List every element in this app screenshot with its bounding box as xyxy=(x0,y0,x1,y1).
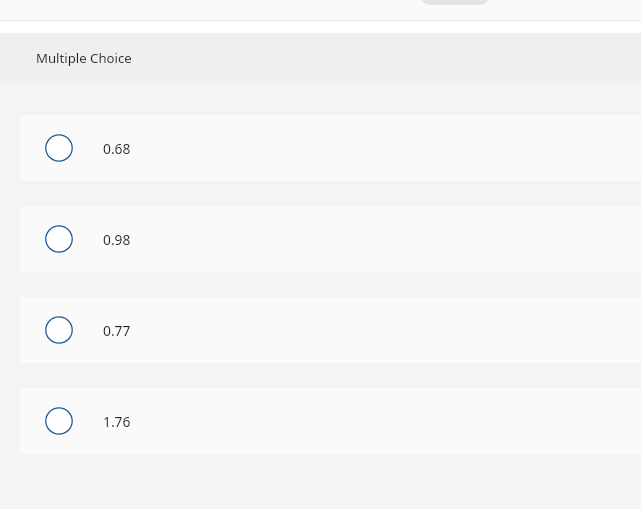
button[interactable]: 0.77 xyxy=(20,297,641,363)
button[interactable]: 0.68 xyxy=(20,115,641,181)
button[interactable]: Submit xyxy=(421,0,489,5)
staticText: Multiple Choice xyxy=(36,49,132,67)
button[interactable]: 0.98 xyxy=(20,206,641,272)
staticText: 0.98 xyxy=(103,230,131,249)
staticText: 0.77 xyxy=(103,321,131,340)
button[interactable]: 1.76 xyxy=(20,388,641,454)
staticText: 1.76 xyxy=(103,412,131,431)
staticText: 0.68 xyxy=(103,139,131,158)
